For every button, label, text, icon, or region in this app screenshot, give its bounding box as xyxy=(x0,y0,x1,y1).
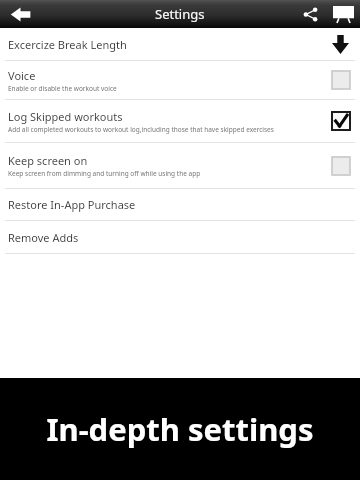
button[interactable]: Restore In-App Purchase xyxy=(0,189,360,220)
staticText: Add all completed workouts to workout lo… xyxy=(8,125,274,134)
button[interactable]: Keep screen on xyxy=(0,143,360,188)
staticText: Log Skipped workouts xyxy=(8,109,123,124)
staticText: Excercize Break Length xyxy=(8,37,127,52)
staticText: Settings xyxy=(155,5,205,23)
button[interactable]: Enabled xyxy=(332,112,350,130)
staticText: Keep screen on xyxy=(8,153,88,168)
staticText: Keep screen from dimming and turning off… xyxy=(8,169,201,178)
button[interactable]: Presentation board xyxy=(326,0,360,28)
staticText: In-depth settings xyxy=(0,408,360,450)
staticText: Remove Adds xyxy=(8,230,79,245)
button[interactable]: Log Skipped workouts xyxy=(0,100,360,142)
button[interactable]: Share xyxy=(294,0,326,28)
button[interactable]: Disabled xyxy=(332,71,350,89)
button[interactable]: Back xyxy=(0,0,40,28)
staticText: Voice xyxy=(8,68,36,83)
button[interactable]: Voice xyxy=(0,61,360,99)
staticText: Enable or disable the workout voice xyxy=(8,84,117,93)
staticText: Restore In-App Purchase xyxy=(8,197,136,212)
button[interactable]: Excercize Break Length xyxy=(0,28,360,60)
button[interactable]: Disabled xyxy=(332,157,350,175)
button[interactable]: Remove Adds xyxy=(0,221,360,253)
